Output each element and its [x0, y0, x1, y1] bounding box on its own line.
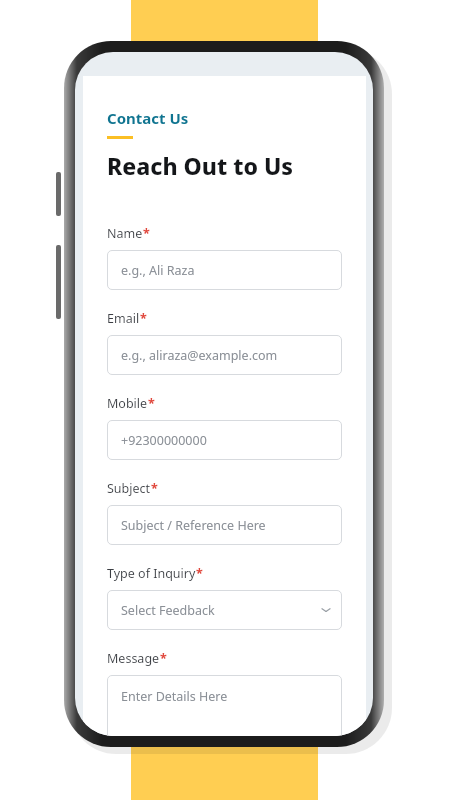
staticText: *	[143, 225, 150, 242]
staticText: *	[196, 565, 203, 582]
button[interactable]: Email	[107, 335, 342, 375]
staticText: Subject	[107, 480, 151, 497]
staticText: Select Feedback	[121, 602, 215, 619]
button[interactable]: Subject	[107, 505, 342, 545]
staticText: Reach Out to Us	[107, 150, 294, 181]
staticText: *	[160, 650, 167, 667]
other: Power	[56, 245, 61, 319]
staticText: Subject / Reference Here	[121, 517, 266, 534]
staticText: *	[140, 310, 147, 327]
staticText: e.g., Ali Raza	[121, 262, 195, 279]
button[interactable]: Name	[107, 250, 342, 290]
staticText: Type of Inquiry	[107, 565, 196, 582]
staticText: Contact Us	[107, 108, 189, 128]
staticText: Enter Details Here	[121, 688, 228, 705]
button[interactable]: Message	[107, 675, 342, 736]
staticText: Mobile	[107, 395, 148, 412]
staticText: *	[151, 480, 158, 497]
staticText: *	[148, 395, 155, 412]
staticText: e.g., aliraza@example.com	[121, 347, 278, 364]
button[interactable]: Type of Inquiry	[107, 590, 342, 630]
button[interactable]: Mobile	[107, 420, 342, 460]
staticText: Message	[107, 650, 160, 667]
staticText: +92300000000	[121, 432, 207, 449]
staticText: Name	[107, 225, 143, 242]
other: Volume	[56, 172, 61, 216]
staticText: Email	[107, 310, 140, 327]
